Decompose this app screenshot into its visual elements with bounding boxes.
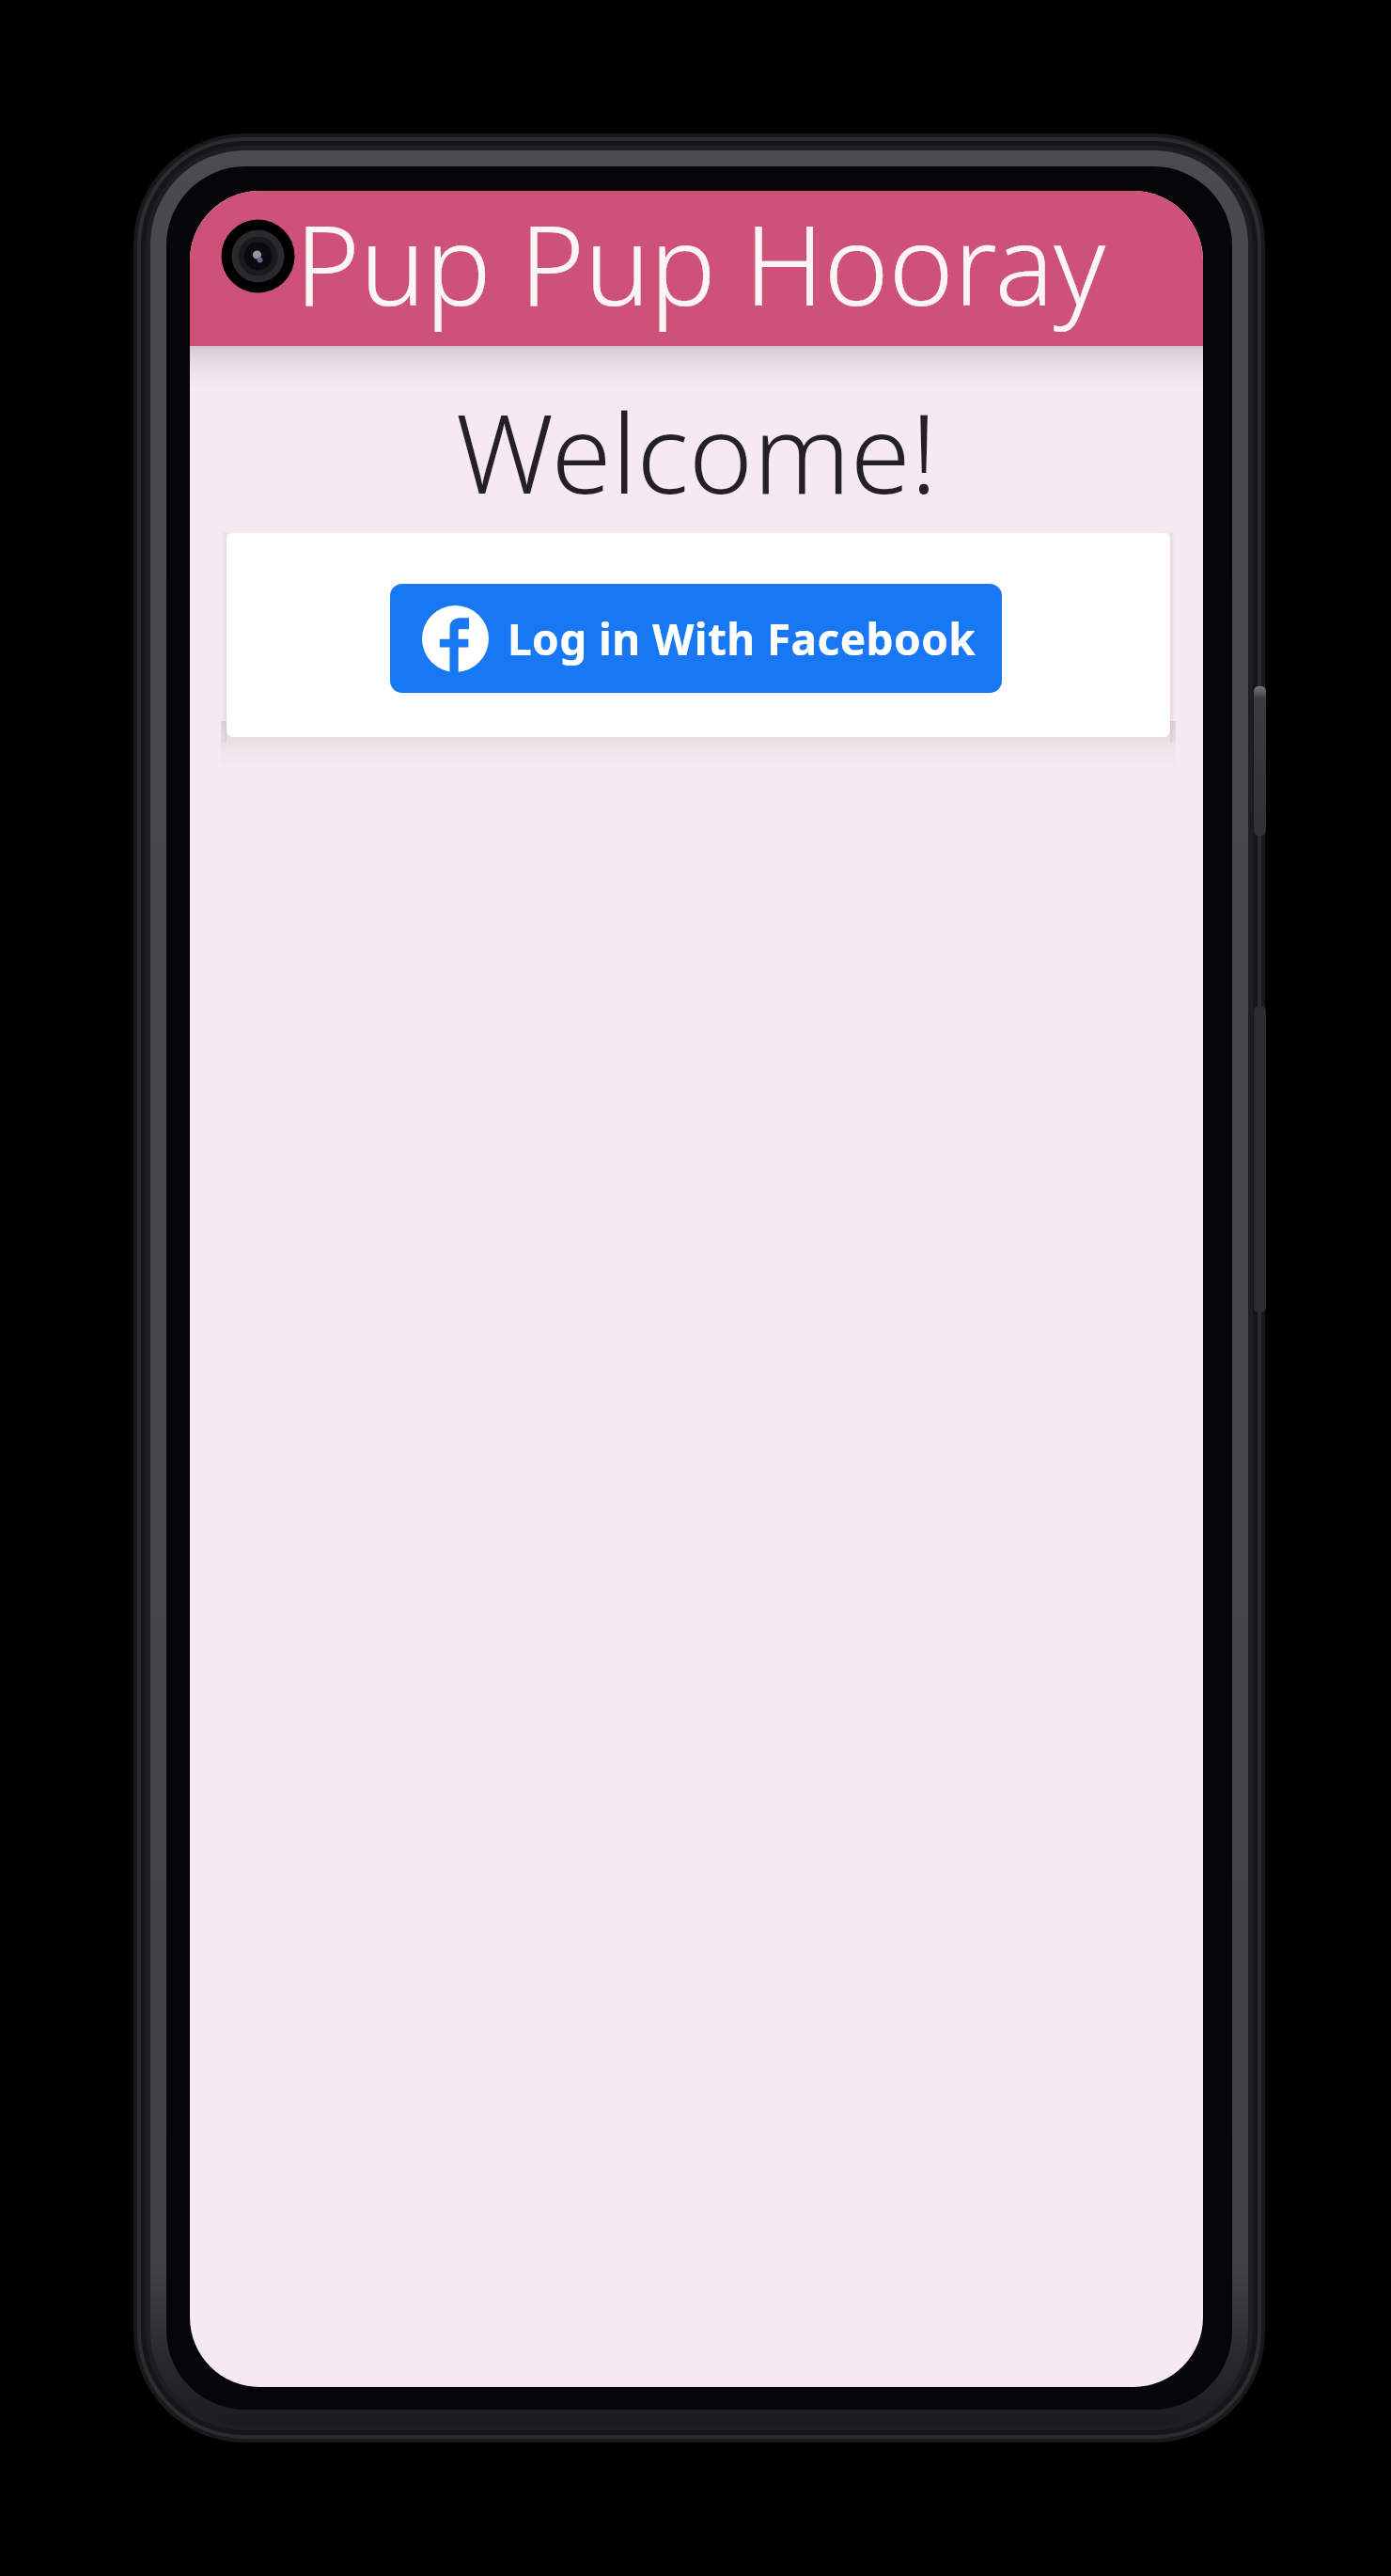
button[interactable]: Log in With Facebook (390, 584, 1002, 693)
staticText: Welcome! (190, 377, 1203, 526)
staticText: Pup Pup Hooray (295, 191, 1106, 338)
staticText: Log in With Facebook (508, 609, 977, 668)
